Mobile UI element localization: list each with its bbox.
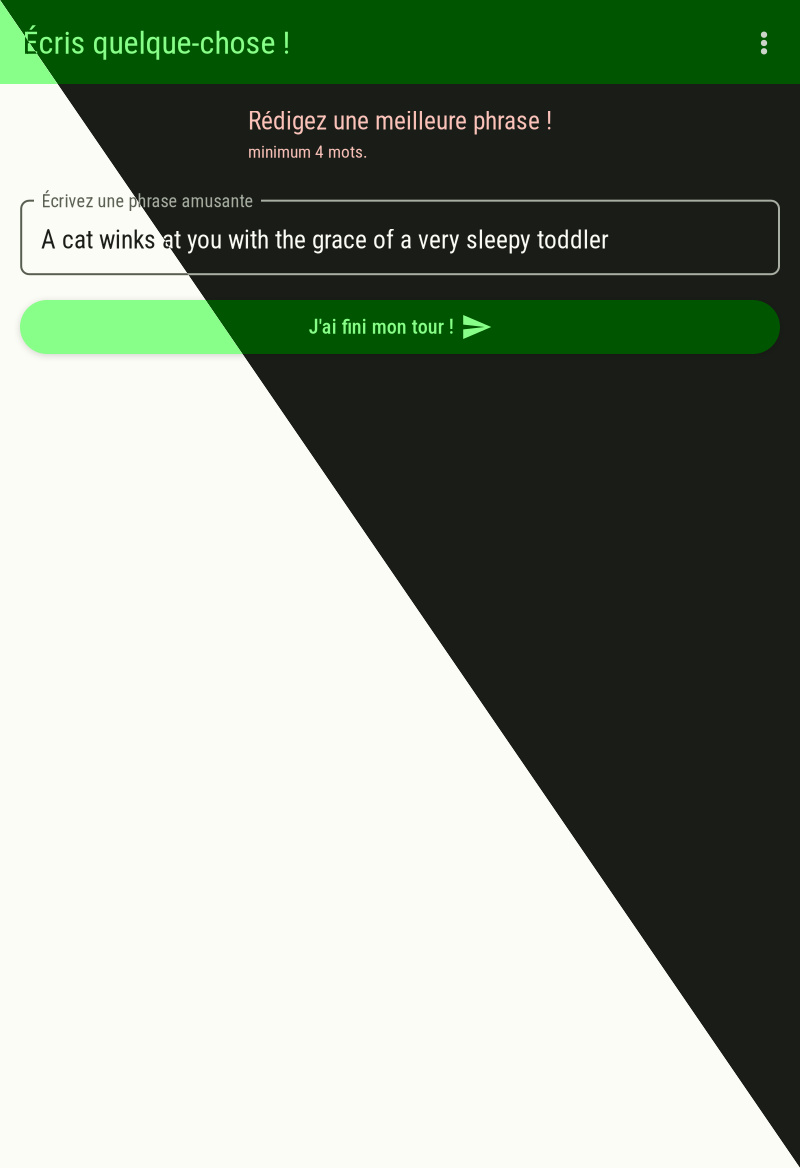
staticText: Écris quelque-chose ! <box>22 24 290 61</box>
staticText: A cat winks at you with the grace of a v… <box>41 225 609 255</box>
staticText: Rédigez une meilleure phrase ! <box>248 106 552 136</box>
staticText: A cat winks at you with the grace of a v… <box>41 225 609 255</box>
button[interactable]: J'ai fini mon tour ! <box>20 300 780 354</box>
staticText: Rédigez une meilleure phrase ! <box>248 106 552 136</box>
staticText: Écris quelque-chose ! <box>22 24 290 61</box>
staticText: J'ai fini mon tour ! <box>309 315 454 339</box>
staticText: Écrivez une phrase amusante <box>41 190 253 212</box>
staticText: minimum 4 mots. <box>248 142 368 162</box>
staticText: minimum 4 mots. <box>248 142 368 162</box>
button[interactable]: More options <box>740 19 788 67</box>
staticText: Écrivez une phrase amusante <box>41 190 253 212</box>
button[interactable]: J'ai fini mon tour ! <box>20 300 780 354</box>
button[interactable]: More options <box>740 19 788 67</box>
staticText: J'ai fini mon tour ! <box>309 315 454 339</box>
